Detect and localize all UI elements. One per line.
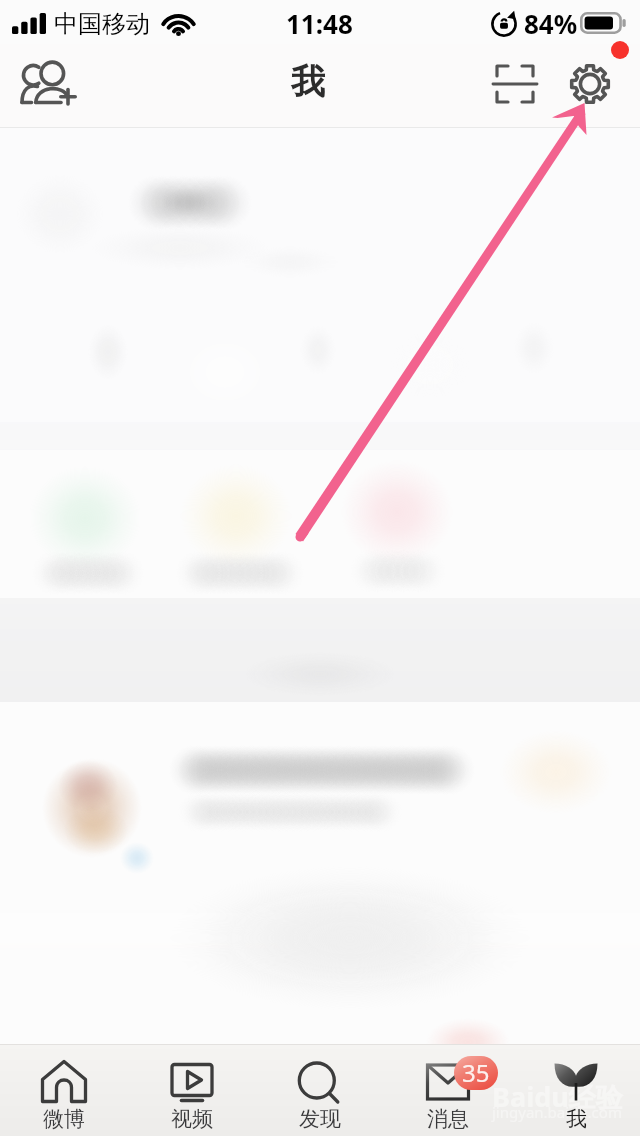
staticText: 消息 <box>427 1106 469 1132</box>
staticText: 我 <box>566 1106 587 1132</box>
staticText: 中国移动 <box>54 9 150 39</box>
staticText: jingyan.baidu.com <box>492 1102 622 1122</box>
staticText: 视频 <box>171 1106 213 1132</box>
staticText: Baidu经验 <box>492 1078 623 1115</box>
button[interactable]: Scan QR code <box>474 44 556 128</box>
button[interactable]: 发现 <box>256 1044 384 1136</box>
button[interactable]: 微博 <box>0 1044 128 1136</box>
staticText: 84% <box>524 6 578 41</box>
staticText: 发现 <box>299 1106 341 1132</box>
staticText: 微博 <box>43 1106 85 1132</box>
button[interactable]: Settings <box>556 44 640 128</box>
staticText: 35 <box>462 1056 490 1089</box>
staticText: 11:48 <box>286 6 353 41</box>
button[interactable]: 视频 <box>128 1044 256 1136</box>
button[interactable]: 我 <box>512 1044 640 1136</box>
button[interactable]: 35 <box>384 1044 512 1136</box>
button[interactable]: Add friends <box>0 44 100 128</box>
staticText: 我 <box>291 60 325 103</box>
